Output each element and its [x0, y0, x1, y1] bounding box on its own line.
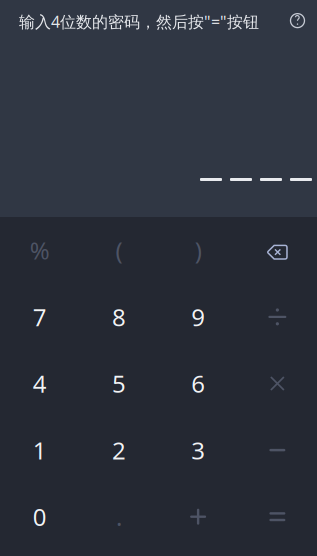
staticText: 4 — [33, 368, 47, 399]
staticText: 9 — [191, 301, 205, 333]
button[interactable]: 5 — [79, 350, 158, 417]
button[interactable]: ) — [158, 217, 238, 284]
button[interactable]: Plus — [158, 483, 238, 550]
button[interactable]: % — [0, 217, 79, 284]
button[interactable]: 1 — [0, 417, 79, 483]
staticText: ( — [115, 234, 122, 266]
staticText: 6 — [191, 368, 205, 399]
button[interactable]: Help — [289, 12, 309, 32]
staticText: 7 — [33, 301, 47, 333]
button[interactable]: 2 — [79, 417, 158, 483]
staticText: . — [116, 501, 122, 533]
button[interactable]: Equals — [238, 483, 317, 550]
staticText: 1 — [33, 434, 47, 466]
staticText: 5 — [112, 368, 126, 399]
button[interactable]: 8 — [79, 284, 158, 350]
button[interactable]: 0 — [0, 483, 79, 550]
button[interactable]: 3 — [158, 417, 238, 483]
staticText: ) — [195, 234, 202, 266]
button[interactable]: ( — [79, 217, 158, 284]
button[interactable]: Minus — [238, 417, 317, 483]
button[interactable]: 6 — [158, 350, 238, 417]
staticText: % — [30, 234, 50, 266]
button[interactable]: Multiply — [238, 350, 317, 417]
staticText: 输入4位数的密码，然后按"="按钮 — [19, 11, 259, 32]
button[interactable]: Divide — [238, 284, 317, 350]
button[interactable]: 9 — [158, 284, 238, 350]
button[interactable]: Delete — [238, 217, 317, 284]
staticText: 2 — [112, 434, 126, 466]
button[interactable]: 4 — [0, 350, 79, 417]
staticText: 0 — [33, 501, 47, 533]
staticText: 3 — [191, 434, 205, 466]
button[interactable]: 7 — [0, 284, 79, 350]
staticText: 8 — [112, 301, 126, 333]
